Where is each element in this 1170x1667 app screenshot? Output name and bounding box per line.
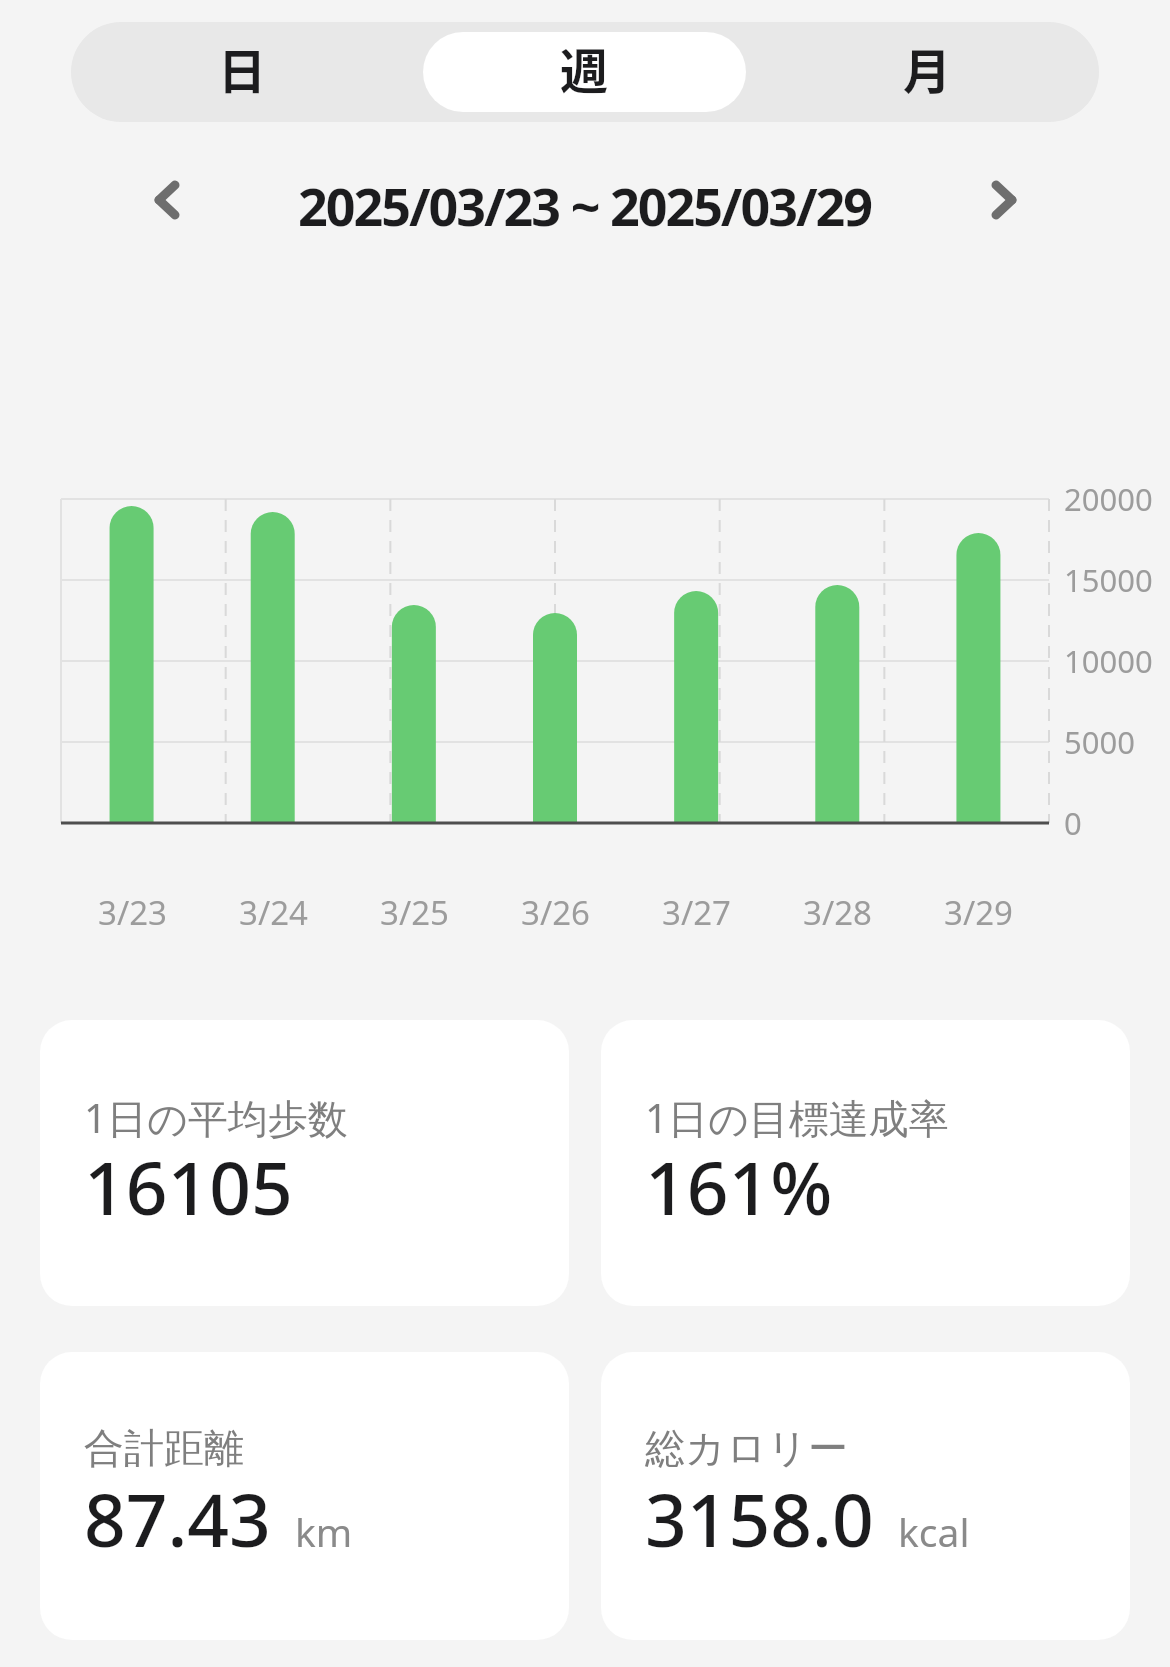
staticText: 3158.0 (645, 1469, 874, 1568)
staticText: 15000 (1064, 559, 1153, 601)
button[interactable] (154, 180, 180, 220)
staticText: 3/26 (521, 890, 590, 934)
staticText: 週 (560, 33, 609, 103)
staticText: 2025/03/23 ~ 2025/03/29 (298, 170, 872, 232)
staticText: 161% (645, 1137, 833, 1236)
staticText: 87.43 (84, 1469, 271, 1568)
button[interactable] (991, 180, 1017, 220)
staticText: 5000 (1064, 721, 1135, 763)
staticText: 3/27 (662, 890, 731, 934)
button[interactable]: 1日の目標達成率 (601, 1020, 1130, 1306)
staticText: 総カロリー (645, 1423, 848, 1473)
staticText: 3/25 (380, 890, 449, 934)
staticText: 月 (903, 33, 952, 103)
staticText: 1日の平均歩数 (84, 1090, 348, 1142)
staticText: 0 (1064, 802, 1082, 844)
staticText: 20000 (1064, 478, 1153, 520)
staticText: 合計距離 (84, 1423, 244, 1473)
button[interactable]: 週 (423, 32, 746, 112)
button[interactable]: 1日の平均歩数 (40, 1020, 569, 1306)
staticText: 1日の目標達成率 (645, 1090, 949, 1142)
button[interactable]: 総カロリー (601, 1352, 1130, 1640)
staticText: 10000 (1064, 640, 1153, 682)
button[interactable]: 合計距離 (40, 1352, 569, 1640)
button[interactable]: 月 (766, 32, 1089, 112)
staticText: 3/29 (944, 890, 1013, 934)
staticText: 3/23 (98, 890, 167, 934)
button[interactable]: 日 (81, 32, 403, 112)
staticText: 3/28 (803, 890, 872, 934)
staticText: kcal (898, 1505, 970, 1558)
staticText: 日 (218, 33, 267, 103)
staticText: 16105 (84, 1137, 293, 1236)
staticText: 3/24 (239, 890, 308, 934)
staticText: km (295, 1505, 353, 1558)
